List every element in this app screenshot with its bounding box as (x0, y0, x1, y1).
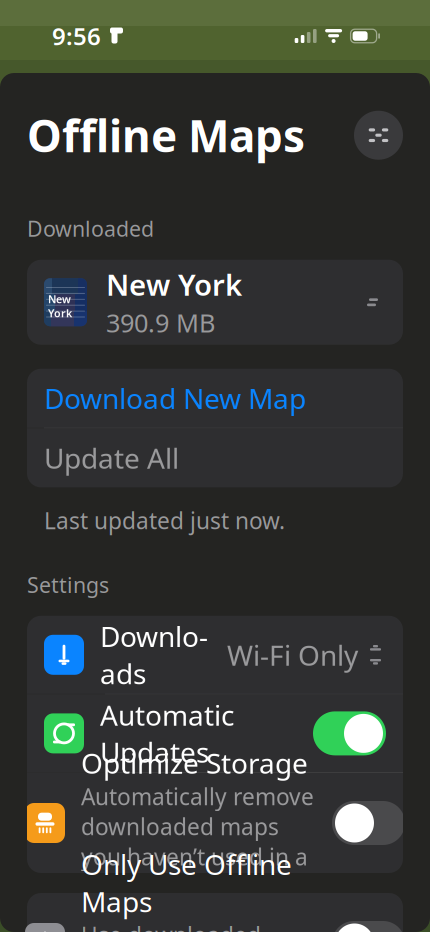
staticText: Update All (44, 439, 179, 476)
staticText: New York (106, 265, 242, 304)
button[interactable]: Downloads (27, 616, 403, 694)
button[interactable]: Update All (27, 428, 403, 487)
staticText: Only Use Offline Maps (81, 846, 292, 920)
staticText: Download New Map (44, 380, 306, 417)
button[interactable]: Only Use Offline Maps (27, 893, 403, 932)
staticText: Automatically remove downloaded maps you… (81, 781, 314, 902)
button[interactable]: New York (27, 260, 403, 345)
staticText: Optimize Storage (81, 744, 308, 781)
staticText: Wi-Fi Only (227, 636, 358, 673)
button[interactable]: Download New Map (27, 369, 403, 428)
staticText: Offline Maps (27, 106, 305, 164)
staticText: Downloaded (27, 214, 154, 243)
button[interactable]: Close (354, 111, 403, 160)
staticText: Automatic Updates (100, 696, 234, 771)
staticText: New York (48, 292, 72, 320)
button[interactable]: Automatic Updates (27, 694, 403, 772)
button[interactable]: Optimize Storage (27, 773, 403, 873)
staticText: Last updated just now. (44, 505, 285, 535)
staticText: 390.9 MB (106, 306, 215, 339)
staticText: Downloads (100, 618, 208, 692)
staticText: Use downloaded maps even when you have a… (81, 920, 308, 932)
staticText: Settings (27, 570, 109, 599)
staticText: 9:56 (52, 20, 101, 52)
